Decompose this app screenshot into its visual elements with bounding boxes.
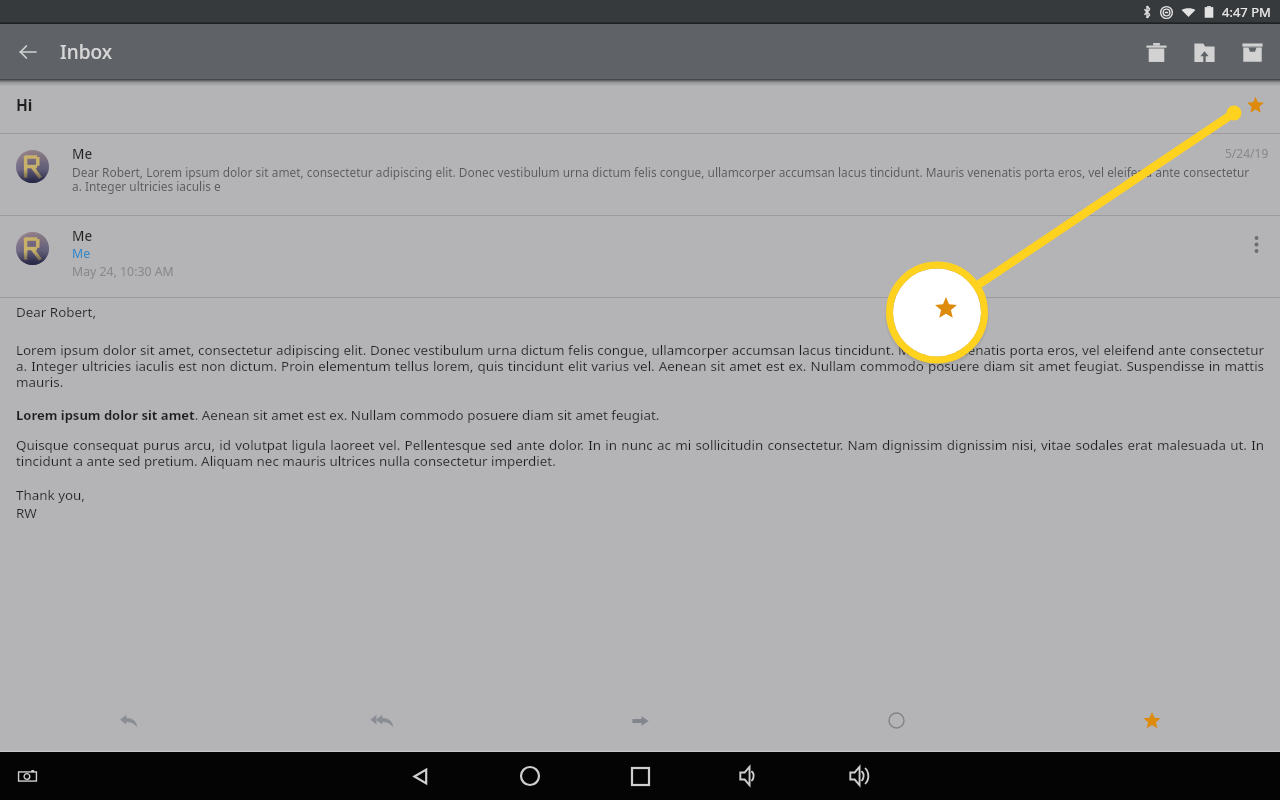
button[interactable]: Back (398, 754, 442, 798)
button[interactable]: Star (1024, 697, 1280, 744)
staticText: Dear Robert, (16, 303, 97, 321)
button[interactable]: Move to folder (1180, 28, 1228, 76)
button[interactable]: Reply all (256, 697, 512, 744)
button[interactable]: Mark unread (768, 697, 1024, 744)
button[interactable]: Volume down (728, 754, 772, 798)
staticText: Hi (16, 94, 33, 115)
button[interactable]: More options (1240, 228, 1272, 260)
button[interactable]: Star (1238, 88, 1272, 122)
button[interactable]: Recents (618, 754, 662, 798)
button[interactable]: Archive (1228, 28, 1276, 76)
button[interactable]: Screenshot (12, 761, 42, 791)
staticText: Me (72, 145, 93, 163)
staticText: May 24, 10:30 AM (72, 263, 174, 280)
button[interactable]: Me (0, 134, 1280, 215)
button[interactable]: Forward (512, 697, 768, 744)
staticText: Quisque consequat purus arcu, id volutpa… (16, 436, 1264, 470)
staticText: Dear Robert, Lorem ipsum dolor sit amet,… (72, 164, 1252, 195)
button[interactable]: Volume up (838, 754, 882, 798)
button[interactable]: Me (0, 216, 1280, 297)
staticText: Inbox (60, 39, 112, 65)
staticText: Me (72, 227, 93, 245)
button[interactable]: Back (8, 32, 48, 72)
staticText: Lorem ipsum dolor sit amet. Aenean sit a… (16, 406, 660, 424)
staticText: Me (72, 245, 91, 262)
button[interactable]: Delete (1132, 28, 1180, 76)
staticText: 4:47 PM (1222, 3, 1271, 21)
staticText: Lorem ipsum dolor sit amet, consectetur … (16, 341, 1264, 391)
staticText: 5/24/19 (1225, 145, 1269, 161)
staticText: Thank you, RW (16, 486, 85, 522)
button[interactable]: Home (508, 754, 552, 798)
